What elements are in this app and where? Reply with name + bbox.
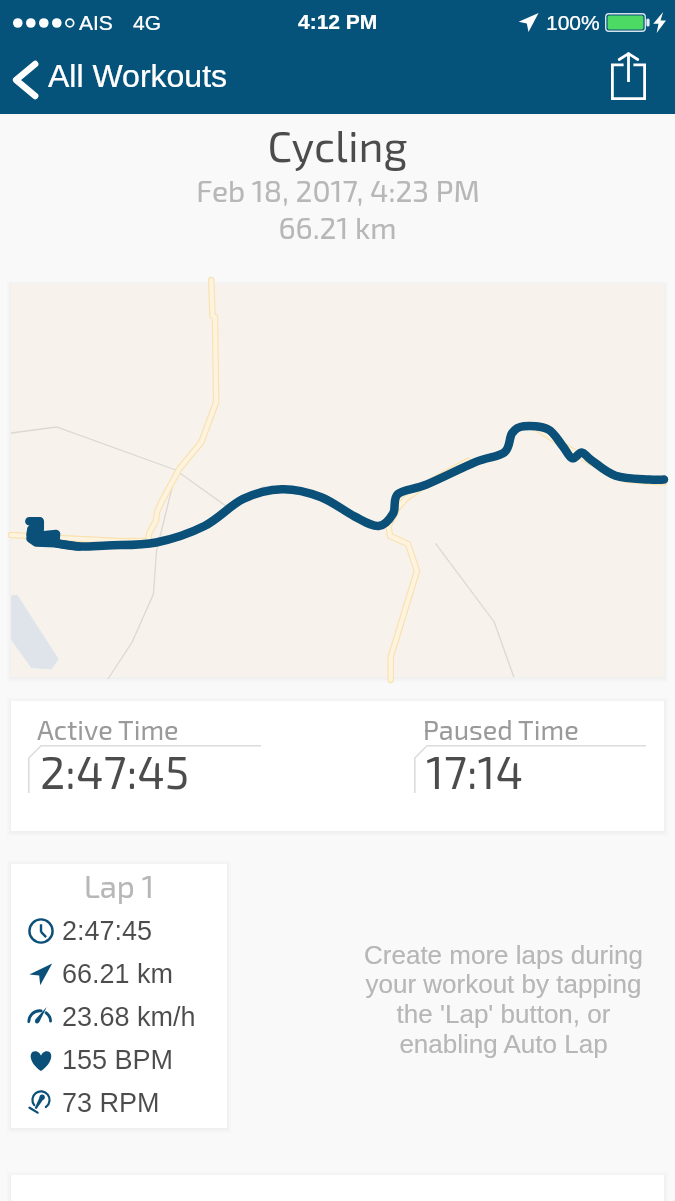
button[interactable]: Route map bbox=[11, 284, 664, 677]
button[interactable]: Share bbox=[595, 48, 675, 111]
staticText: Active Time bbox=[37, 713, 179, 745]
staticText: 100% bbox=[546, 11, 600, 34]
button[interactable]: All Workouts bbox=[0, 52, 240, 108]
button[interactable]: Lap 1 bbox=[11, 864, 227, 1128]
staticText: 73 RPM bbox=[62, 1088, 160, 1118]
staticText: 66.21 km bbox=[278, 209, 397, 245]
staticText: 2:47:45 bbox=[40, 744, 190, 798]
staticText: AIS bbox=[79, 11, 113, 34]
staticText: Create more laps during your workout by … bbox=[364, 940, 643, 1059]
staticText: Cycling bbox=[267, 119, 408, 171]
staticText: 2:47:45 bbox=[62, 916, 153, 946]
staticText: 4:12 PM bbox=[298, 10, 378, 33]
staticText: 23.68 km/h bbox=[62, 1002, 196, 1032]
staticText: Paused Time bbox=[423, 713, 579, 745]
staticText: 155 BPM bbox=[62, 1045, 174, 1075]
staticText: 17:14 bbox=[426, 744, 524, 798]
staticText: Lap 1 bbox=[11, 867, 227, 904]
staticText: 4G bbox=[133, 11, 162, 34]
staticText: Feb 18, 2017, 4:23 PM bbox=[196, 172, 480, 208]
staticText: All Workouts bbox=[48, 58, 228, 94]
button[interactable]: Active Time bbox=[11, 701, 664, 831]
staticText: 66.21 km bbox=[62, 959, 174, 989]
